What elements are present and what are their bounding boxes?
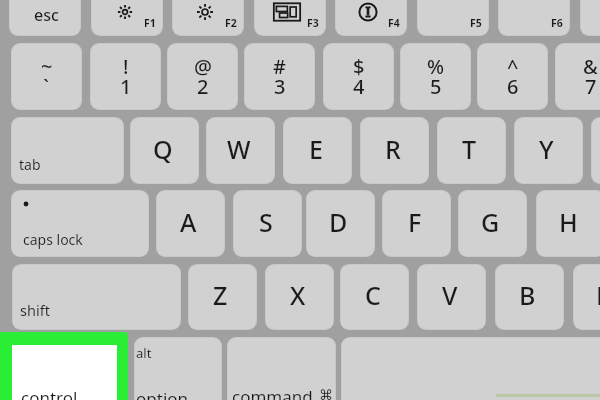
staticText: R [385, 132, 401, 166]
staticText: Y [539, 132, 554, 166]
staticText: F4 [388, 16, 400, 30]
staticText: 5 [430, 73, 442, 100]
staticText: tab [19, 155, 41, 174]
staticText: ! [123, 53, 129, 80]
button[interactable]: V [417, 264, 486, 330]
button[interactable]: B [495, 264, 564, 330]
staticText: G [481, 205, 500, 239]
staticText: D [329, 205, 348, 239]
button[interactable]: C [340, 264, 409, 330]
staticText: ⌘ [319, 387, 333, 400]
staticText: 3 [274, 73, 286, 100]
staticText: 6 [507, 73, 519, 100]
staticText: @ [194, 53, 212, 80]
staticText: ` [43, 73, 50, 100]
button[interactable]: space [341, 337, 600, 400]
staticText: B [519, 278, 536, 312]
button[interactable]: Y [514, 117, 583, 184]
button[interactable]: F4 [335, 0, 407, 36]
staticText: 1 [120, 73, 132, 100]
button[interactable]: option [134, 337, 222, 400]
staticText: C [365, 278, 381, 312]
button[interactable]: T [437, 117, 506, 184]
button[interactable]: E [283, 117, 352, 184]
button[interactable]: 3 [244, 43, 315, 110]
button[interactable]: 2 [167, 43, 238, 110]
button[interactable]: F2 [172, 0, 244, 36]
staticText: F [408, 205, 422, 239]
staticText: 4 [353, 73, 365, 100]
staticText: & [583, 53, 598, 80]
button[interactable]: 7 [555, 43, 600, 110]
staticText: 2 [197, 73, 209, 100]
staticText: F2 [225, 16, 237, 30]
staticText: W [227, 132, 251, 166]
button[interactable]: X [265, 264, 334, 330]
staticText: # [273, 53, 286, 80]
staticText: shift [20, 300, 50, 320]
staticText: ^ [507, 53, 519, 80]
staticText: option [136, 387, 189, 400]
button[interactable]: F [382, 190, 451, 257]
button[interactable]: F5 [417, 0, 489, 36]
button[interactable]: caps lock [11, 190, 149, 257]
staticText: esc [34, 4, 59, 26]
staticText: command [232, 385, 313, 400]
staticText: $ [353, 53, 365, 80]
staticText: F5 [470, 16, 482, 30]
button[interactable]: 6 [477, 43, 548, 110]
staticText: alt [136, 344, 152, 362]
button[interactable]: A [156, 190, 225, 257]
button[interactable]: shift [12, 264, 181, 330]
button[interactable]: F6 [498, 0, 570, 36]
staticText: S [259, 205, 273, 239]
staticText: F3 [307, 16, 319, 30]
button[interactable]: 4 [323, 43, 394, 110]
staticText: F1 [144, 16, 156, 30]
button[interactable]: H [536, 190, 600, 257]
button[interactable]: Z [188, 264, 257, 330]
staticText: E [309, 132, 323, 166]
staticText: N [596, 278, 600, 312]
staticText: V [442, 278, 458, 312]
button[interactable]: W [206, 117, 275, 184]
staticText: ~ [41, 53, 53, 80]
staticText: H [559, 205, 578, 239]
staticText: X [290, 278, 306, 312]
button[interactable]: S [233, 190, 302, 257]
button[interactable]: Q [130, 117, 199, 184]
button[interactable]: N [573, 264, 600, 330]
staticText: T [462, 132, 477, 166]
staticText: control [21, 386, 78, 400]
button[interactable]: F1 [91, 0, 163, 36]
button[interactable]: control key highlighted [0, 332, 128, 400]
staticText: caps lock [23, 230, 83, 249]
button[interactable]: D [306, 190, 375, 257]
staticText: 7 [585, 73, 597, 100]
button[interactable]: F7 [580, 0, 600, 36]
button[interactable]: F3 [254, 0, 326, 36]
staticText: % [427, 53, 445, 80]
button[interactable]: tab [11, 117, 124, 184]
button[interactable]: 1 [90, 43, 161, 110]
button[interactable]: ` [11, 43, 82, 110]
button[interactable]: esc [9, 0, 81, 36]
button[interactable]: U [591, 117, 600, 184]
staticText: F6 [551, 16, 563, 30]
button[interactable]: 5 [400, 43, 471, 110]
staticText: A [180, 205, 197, 239]
button[interactable]: G [458, 190, 527, 257]
button[interactable]: R [360, 117, 429, 184]
staticText: Z [213, 278, 228, 312]
staticText: Q [153, 132, 173, 166]
button[interactable]: command [227, 337, 336, 400]
